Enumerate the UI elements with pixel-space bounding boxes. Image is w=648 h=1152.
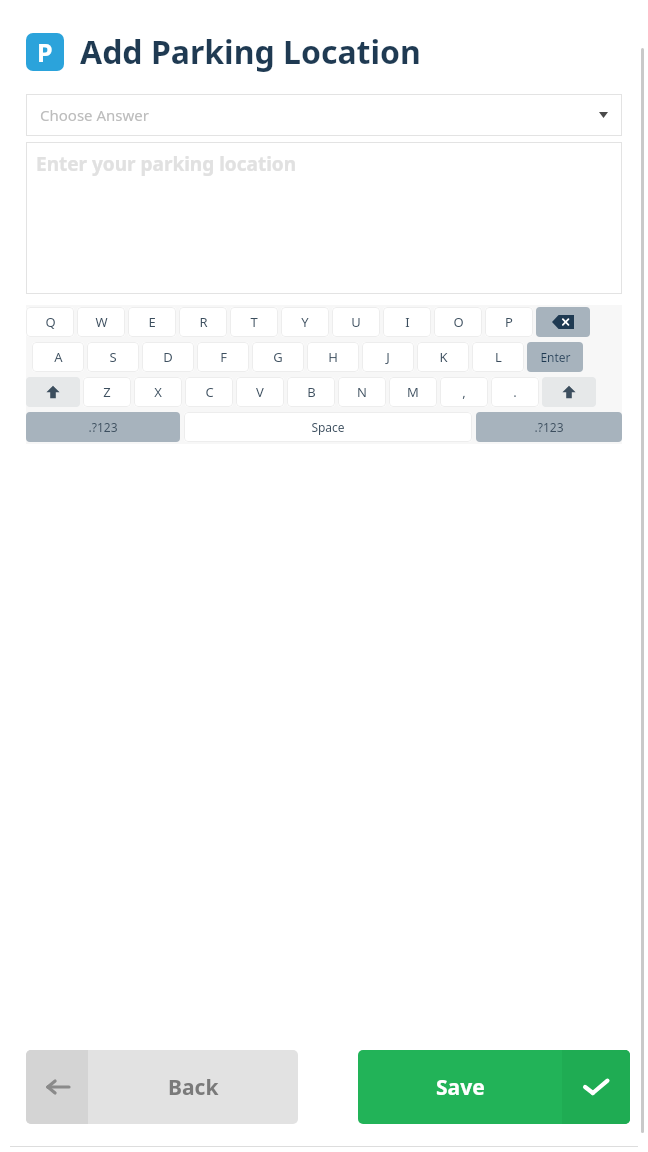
- button[interactable]: U: [332, 307, 380, 337]
- button[interactable]: Shift: [26, 377, 80, 407]
- staticText: Save: [436, 1073, 485, 1102]
- staticText: S: [109, 348, 117, 366]
- button[interactable]: Save: [358, 1050, 630, 1124]
- staticText: O: [453, 313, 464, 331]
- staticText: I: [405, 313, 410, 331]
- staticText: Enter: [540, 349, 571, 365]
- button[interactable]: .: [491, 377, 539, 407]
- staticText: ,: [462, 383, 466, 401]
- staticText: Z: [103, 383, 111, 401]
- staticText: U: [351, 313, 361, 331]
- button[interactable]: Shift: [542, 377, 596, 407]
- button[interactable]: O: [434, 307, 482, 337]
- staticText: L: [495, 348, 502, 366]
- staticText: .?123: [534, 419, 564, 435]
- staticText: Choose Answer: [40, 105, 599, 125]
- button[interactable]: S: [87, 342, 139, 372]
- button[interactable]: Enter: [527, 342, 583, 372]
- staticText: N: [357, 383, 367, 401]
- button[interactable]: Q: [26, 307, 74, 337]
- button[interactable]: X: [134, 377, 182, 407]
- staticText: W: [95, 313, 108, 331]
- staticText: C: [205, 383, 214, 401]
- button[interactable]: R: [179, 307, 227, 337]
- button[interactable]: V: [236, 377, 284, 407]
- button[interactable]: I: [383, 307, 431, 337]
- staticText: Y: [301, 313, 309, 331]
- button[interactable]: ,: [440, 377, 488, 407]
- button[interactable]: M: [389, 377, 437, 407]
- button[interactable]: H: [307, 342, 359, 372]
- button[interactable]: Back: [26, 1050, 298, 1124]
- button[interactable]: G: [252, 342, 304, 372]
- button[interactable]: P: [485, 307, 533, 337]
- button[interactable]: .?123: [476, 412, 622, 442]
- staticText: K: [439, 348, 448, 366]
- staticText: F: [220, 348, 227, 366]
- button[interactable]: Backspace: [536, 307, 590, 337]
- staticText: .?123: [88, 419, 118, 435]
- staticText: P: [505, 313, 513, 331]
- button[interactable]: D: [142, 342, 194, 372]
- button[interactable]: J: [362, 342, 414, 372]
- staticText: Enter your parking location: [36, 151, 297, 177]
- staticText: B: [307, 383, 316, 401]
- button[interactable]: Z: [83, 377, 131, 407]
- button[interactable]: E: [128, 307, 176, 337]
- staticText: V: [256, 383, 264, 401]
- staticText: T: [250, 313, 258, 331]
- staticText: D: [163, 348, 173, 366]
- staticText: G: [273, 348, 283, 366]
- button[interactable]: B: [287, 377, 335, 407]
- staticText: .: [513, 383, 517, 401]
- button[interactable]: Choose Answer: [26, 94, 622, 136]
- staticText: P: [37, 35, 53, 69]
- button[interactable]: .?123: [26, 412, 180, 442]
- staticText: X: [154, 383, 162, 401]
- staticText: E: [148, 313, 156, 331]
- button[interactable]: K: [417, 342, 469, 372]
- button[interactable]: N: [338, 377, 386, 407]
- button[interactable]: C: [185, 377, 233, 407]
- button[interactable]: Enter your parking location: [26, 142, 622, 294]
- button[interactable]: Space: [184, 412, 472, 442]
- staticText: Space: [311, 419, 345, 435]
- staticText: Add Parking Location: [80, 30, 421, 74]
- button[interactable]: Y: [281, 307, 329, 337]
- staticText: A: [54, 348, 63, 366]
- staticText: Back: [168, 1073, 219, 1102]
- button[interactable]: F: [197, 342, 249, 372]
- staticText: M: [407, 383, 419, 401]
- staticText: R: [199, 313, 208, 331]
- staticText: H: [328, 348, 338, 366]
- staticText: Q: [45, 313, 56, 331]
- button[interactable]: W: [77, 307, 125, 337]
- button[interactable]: L: [472, 342, 524, 372]
- button[interactable]: A: [32, 342, 84, 372]
- button[interactable]: T: [230, 307, 278, 337]
- staticText: J: [386, 348, 390, 366]
